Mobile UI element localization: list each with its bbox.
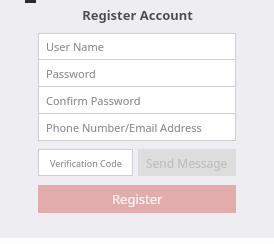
staticText: Password <box>46 66 96 81</box>
button[interactable]: Register <box>38 185 236 213</box>
staticText: Send Message <box>146 155 228 171</box>
staticText: Phone Number/Email Address <box>46 120 202 135</box>
button[interactable]: User Name <box>38 33 236 60</box>
staticText: User Name <box>46 39 104 54</box>
button[interactable]: Confirm Password <box>38 87 236 114</box>
staticText: Register <box>112 190 163 208</box>
staticText: Confirm Password <box>46 93 141 108</box>
button[interactable]: Password <box>38 60 236 87</box>
staticText: Verification Code <box>50 157 122 169</box>
button[interactable]: Verification Code <box>38 149 133 176</box>
button[interactable]: Phone Number/Email Address <box>38 114 236 141</box>
staticText: Register Account <box>82 6 193 24</box>
button[interactable]: Send Message <box>138 149 236 176</box>
